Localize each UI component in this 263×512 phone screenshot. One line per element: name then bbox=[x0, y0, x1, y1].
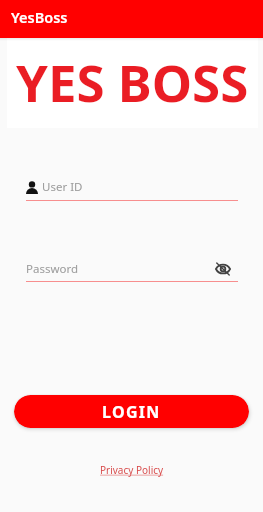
staticText: LOGIN bbox=[102, 401, 161, 423]
staticText: YesBoss bbox=[11, 7, 68, 27]
staticText: YES BOSS bbox=[16, 47, 249, 116]
staticText: Password bbox=[26, 261, 79, 277]
button[interactable]: User ID bbox=[26, 179, 238, 201]
button[interactable]: Password bbox=[26, 261, 238, 282]
button[interactable]: YesBoss bbox=[0, 0, 263, 38]
button[interactable]: Privacy Policy bbox=[97, 460, 167, 480]
button[interactable]: Show password bbox=[215, 261, 231, 277]
button[interactable]: LOGIN bbox=[14, 395, 249, 428]
staticText: User ID bbox=[42, 179, 83, 195]
